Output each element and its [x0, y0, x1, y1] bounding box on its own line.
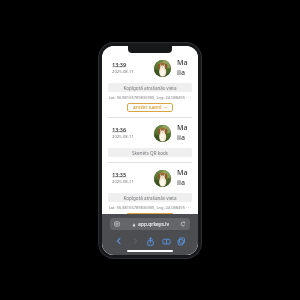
staticText: Lat: 56.88165789836905, Lng: 24.088495 ·…	[108, 205, 192, 210]
button[interactable]: Bookmarks	[159, 234, 173, 248]
staticText: 2025-08-11	[112, 134, 134, 140]
button[interactable]: Tabs	[174, 234, 188, 248]
button[interactable]: Back	[112, 234, 126, 248]
staticText: Kopîgotâ atrašanâs vieta	[123, 195, 177, 201]
staticText: 13:35	[112, 171, 127, 178]
button[interactable]: ATVÉRT KARTÉ	[127, 213, 173, 214]
button[interactable]: ATVÉRT KARTÉ	[127, 103, 173, 112]
button[interactable]: 13:39	[108, 58, 192, 78]
staticText: 2025-08-11	[112, 69, 134, 75]
staticText: 13:39	[112, 61, 127, 68]
staticText: Maiia	[177, 168, 188, 188]
staticText: app.qrkeys.lv	[138, 221, 169, 228]
staticText: Maiia	[177, 123, 188, 143]
button[interactable]: Kopîgotâ atrašanâs vieta	[108, 193, 192, 202]
button[interactable]: Share	[143, 234, 157, 248]
staticText: Lat: 56.88165789836905, Lng: 24.088495 ·…	[108, 95, 192, 100]
staticText: ATVÉRT KARTÉ	[133, 105, 162, 111]
button[interactable]: Skenéts QR kods	[108, 148, 192, 157]
button[interactable]: Kopîgotâ atrašanâs vieta	[108, 83, 192, 92]
staticText: 2025-08-11	[112, 179, 134, 185]
staticText: Maiia	[177, 58, 188, 78]
button[interactable]: 13:35	[108, 168, 192, 188]
staticText: 13:36	[112, 126, 127, 133]
button[interactable]: 13:36	[108, 123, 192, 143]
staticText: Kopîgotâ atrašanâs vieta	[123, 85, 177, 91]
staticText: Skenéts QR kods	[132, 150, 168, 156]
button[interactable]: Address bar	[110, 218, 190, 230]
